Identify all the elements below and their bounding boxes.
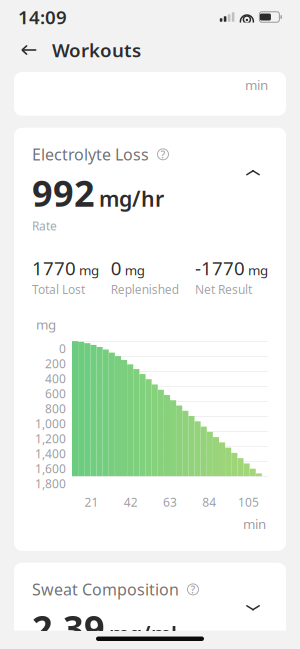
staticText: 1,600 (35, 461, 66, 477)
staticText: Net Result (195, 281, 252, 297)
staticText: 21 (85, 494, 99, 510)
button[interactable]: About Sweat Composition (185, 581, 201, 597)
staticText: 0 (59, 341, 66, 357)
button[interactable]: About Electrolyte Loss (155, 146, 171, 162)
button[interactable]: Back (16, 37, 42, 63)
staticText: mg (248, 261, 268, 279)
staticText: 14:09 (18, 5, 67, 29)
staticText: 200 (45, 356, 66, 372)
staticText: min (245, 76, 268, 94)
staticText: 1,400 (35, 446, 66, 462)
staticText: 1,200 (35, 431, 66, 447)
staticText: ? (190, 582, 195, 596)
staticText: Replenished (111, 281, 179, 297)
staticText: mg (79, 261, 99, 279)
staticText: 2.39 (32, 604, 105, 649)
button[interactable]: Collapse Electrolyte Loss (238, 158, 268, 188)
staticText: mg/ml (109, 619, 177, 648)
staticText: 400 (45, 371, 66, 387)
staticText: 600 (45, 386, 66, 402)
staticText: 63 (163, 494, 177, 510)
staticText: 992 (32, 169, 95, 217)
staticText: 84 (202, 494, 216, 510)
staticText: Electrolyte Loss (32, 144, 149, 165)
staticText: mg (36, 315, 56, 333)
button[interactable]: Expand Sweat Composition (238, 593, 268, 623)
staticText: min (243, 515, 266, 533)
staticText: 105 (238, 494, 259, 510)
staticText: mg/hr (99, 184, 164, 213)
staticText: Total Lost (32, 281, 85, 297)
staticText: 800 (45, 401, 66, 417)
staticText: 42 (124, 494, 138, 510)
staticText: 0 (111, 256, 122, 280)
staticText: Sweat Composition (32, 579, 179, 600)
staticText: Rate (32, 218, 57, 234)
staticText: mg (125, 261, 145, 279)
staticText: 1,800 (35, 476, 66, 492)
staticText: ? (160, 147, 165, 161)
staticText: Workouts (52, 38, 141, 62)
staticText: -1770 (195, 256, 245, 280)
staticText: 1,000 (35, 416, 66, 432)
staticText: 1770 (32, 256, 76, 280)
